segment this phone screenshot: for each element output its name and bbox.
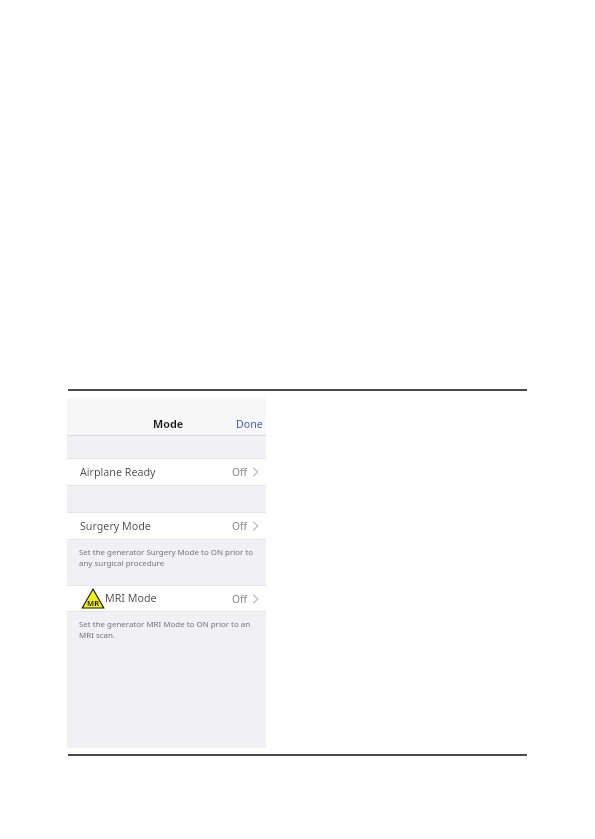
other: Open	[253, 522, 258, 530]
staticText: Off	[232, 592, 247, 606]
staticText: Set the generator Surgery Mode to ON pri…	[79, 547, 258, 569]
other: MR safety warning	[82, 588, 104, 609]
staticText: MRI Mode	[105, 591, 157, 606]
staticText: Set the generator MRI Mode to ON prior t…	[79, 619, 258, 641]
other: Open	[253, 468, 258, 476]
button[interactable]: MR safety warning	[67, 585, 266, 612]
staticText: Done	[236, 417, 263, 431]
staticText: Mode	[153, 416, 184, 431]
other: Open	[253, 595, 258, 603]
staticText: MR	[87, 598, 100, 608]
staticText: Off	[232, 465, 247, 479]
staticText: Off	[232, 519, 247, 533]
button[interactable]: Airplane Ready	[67, 458, 266, 486]
button[interactable]: Surgery Mode	[67, 512, 266, 540]
staticText: Airplane Ready	[80, 465, 156, 480]
button[interactable]: Done	[231, 413, 268, 435]
staticText: Surgery Mode	[80, 519, 151, 534]
